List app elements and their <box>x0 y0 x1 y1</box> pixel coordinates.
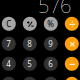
button[interactable]: 5 <box>23 57 37 71</box>
staticText: 9 <box>48 38 53 49</box>
button[interactable]: 6 <box>44 57 58 71</box>
button[interactable]: Add <box>65 77 79 80</box>
staticText: 5 <box>27 58 32 69</box>
staticText: 6 <box>48 58 53 69</box>
button[interactable]: Plus Minus <box>23 17 37 31</box>
staticText: 8 <box>27 38 32 49</box>
button[interactable]: 7 <box>2 37 16 51</box>
button[interactable]: 8 <box>23 37 37 51</box>
button[interactable]: 4 <box>2 57 16 71</box>
button[interactable]: Multiply <box>65 37 79 51</box>
button[interactable]: Divide <box>65 17 79 31</box>
staticText: 4 <box>6 58 11 69</box>
button[interactable]: Clear <box>2 17 16 31</box>
staticText: 576 <box>38 0 71 19</box>
staticText: 7 <box>6 38 11 49</box>
button[interactable]: Subtract <box>65 57 79 71</box>
staticText: C <box>6 18 11 29</box>
button[interactable]: 3 <box>44 77 58 80</box>
button[interactable]: 2 <box>23 77 37 80</box>
button[interactable]: Percent <box>44 17 58 31</box>
button[interactable]: 1 <box>2 77 16 80</box>
staticText: % <box>47 18 54 29</box>
button[interactable]: 9 <box>44 37 58 51</box>
